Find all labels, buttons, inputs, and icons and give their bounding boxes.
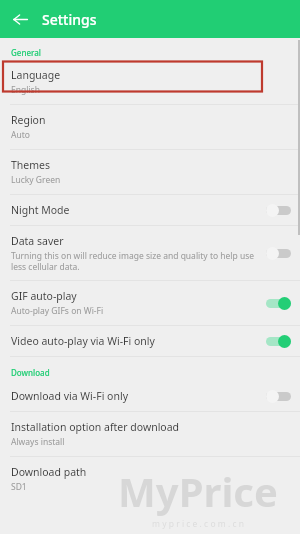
staticText: English	[11, 84, 40, 96]
staticText: Download	[11, 367, 50, 378]
button[interactable]: Back	[7, 6, 33, 32]
staticText: Video auto-play via Wi-Fi only	[11, 334, 155, 348]
button[interactable]: Video auto-play via Wi-Fi only	[0, 326, 300, 356]
button[interactable]: Installation option after download	[0, 412, 300, 456]
staticText: General	[11, 47, 41, 58]
button[interactable]: GIF auto-play	[0, 281, 300, 325]
staticText: Night Mode	[11, 203, 70, 217]
staticText: Always install	[11, 436, 65, 448]
button[interactable]: Themes	[0, 150, 300, 194]
button[interactable]: Night Mode	[0, 195, 300, 225]
staticText: Lucky Green	[11, 174, 61, 186]
staticText: Download path	[11, 465, 87, 479]
staticText: Download via Wi-Fi only	[11, 389, 129, 403]
button[interactable]: Language	[0, 60, 300, 104]
staticText: Data saver	[11, 234, 64, 248]
staticText: Auto-play GIFs on Wi-Fi	[11, 305, 104, 317]
button[interactable]: Region	[0, 105, 300, 149]
staticText: Installation option after download	[11, 420, 180, 434]
staticText: Themes	[11, 158, 51, 172]
staticText: Turning this on will reduce image size a…	[11, 250, 255, 272]
button[interactable]: Data saver	[0, 226, 300, 280]
staticText: GIF auto-play	[11, 289, 77, 303]
staticText: MyPrice	[118, 464, 278, 518]
staticText: m y p r i c e . c o m . c n	[152, 518, 244, 530]
staticText: Auto	[11, 129, 30, 141]
staticText: Language	[11, 68, 61, 82]
staticText: SD1	[11, 481, 27, 493]
button[interactable]: Download path	[0, 457, 300, 501]
staticText: Region	[11, 113, 46, 127]
staticText: Settings	[42, 10, 97, 29]
button[interactable]: Download via Wi-Fi only	[0, 381, 300, 411]
